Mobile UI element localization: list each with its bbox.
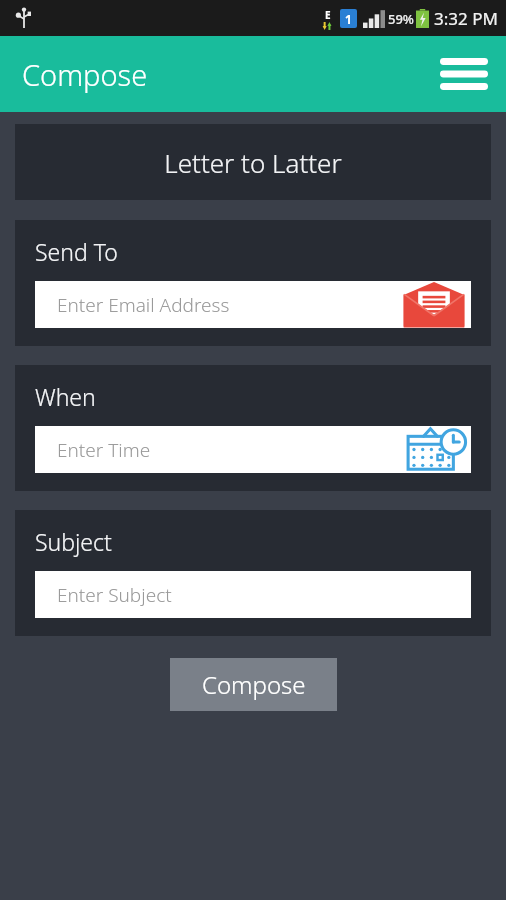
staticText: Compose	[202, 668, 306, 701]
button[interactable]: Enter Email Address	[35, 281, 471, 328]
staticText: Compose	[22, 55, 148, 94]
staticText: Enter Time	[57, 437, 151, 463]
staticText: 59%	[388, 10, 414, 28]
button[interactable]: Letter to Latter	[15, 124, 491, 200]
staticText: 3:32 PM	[434, 7, 498, 30]
button[interactable]: Send To	[15, 220, 491, 346]
staticText: Subject	[35, 526, 112, 557]
button[interactable]: When	[15, 365, 491, 491]
button[interactable]: Menu	[436, 51, 492, 97]
button[interactable]: Enter Subject	[35, 571, 471, 618]
button[interactable]: Compose	[170, 658, 337, 711]
button[interactable]: Subject	[15, 510, 491, 636]
staticText: 1	[345, 11, 352, 27]
staticText: Send To	[35, 236, 118, 267]
button[interactable]: Enter Time	[35, 426, 471, 473]
staticText: Enter Subject	[57, 582, 172, 608]
other: Pick time	[405, 426, 467, 473]
staticText: Letter to Latter	[164, 145, 342, 180]
staticText: Enter Email Address	[57, 292, 230, 318]
staticText: When	[35, 381, 96, 412]
other: Email	[401, 281, 467, 328]
staticText: E	[325, 8, 331, 22]
